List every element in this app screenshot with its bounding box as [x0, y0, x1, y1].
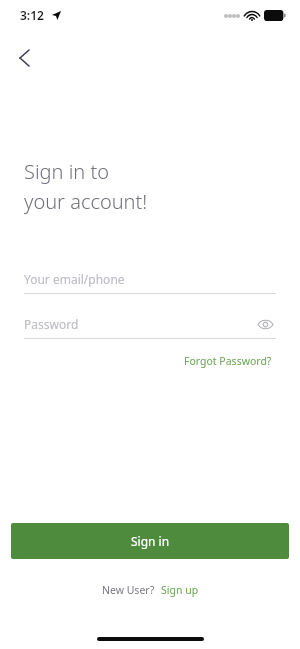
- button[interactable]: Your email/phone: [24, 268, 276, 290]
- staticText: Password: [24, 316, 79, 332]
- staticText: Sign in: [131, 533, 170, 549]
- staticText: Sign in to: [24, 158, 109, 185]
- staticText: your account!: [24, 188, 148, 215]
- staticText: Sign up: [161, 583, 199, 597]
- button[interactable]: Forgot Password?: [180, 350, 276, 372]
- button[interactable]: Sign up: [161, 583, 199, 597]
- staticText: Forgot Password?: [184, 354, 272, 368]
- button[interactable]: Password: [24, 313, 276, 335]
- button[interactable]: Sign in: [11, 523, 289, 559]
- staticText: New User?: [102, 583, 155, 597]
- button[interactable]: Back: [6, 40, 42, 76]
- staticText: Your email/phone: [24, 271, 125, 287]
- button[interactable]: Show password: [254, 313, 276, 335]
- staticText: 3:12: [20, 7, 44, 23]
